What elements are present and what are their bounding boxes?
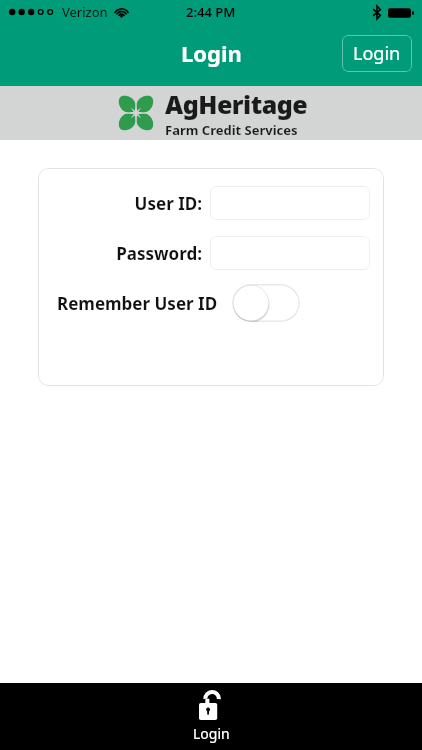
button[interactable]: [210, 186, 370, 220]
button[interactable]: Login: [169, 686, 254, 747]
button[interactable]: Login: [342, 35, 412, 72]
button[interactable]: Remember User ID toggle: [232, 284, 300, 322]
staticText: User ID:: [134, 192, 202, 215]
button[interactable]: [210, 236, 370, 270]
staticText: Login: [193, 724, 230, 743]
staticText: Verizon: [62, 3, 108, 21]
staticText: Login: [181, 38, 242, 68]
staticText: Password:: [116, 242, 202, 265]
staticText: AgHeritage: [165, 87, 308, 121]
staticText: Login: [353, 41, 401, 66]
staticText: 2:44 PM: [186, 3, 236, 21]
staticText: Farm Credit Services: [165, 121, 298, 139]
staticText: Remember User ID: [57, 292, 218, 315]
